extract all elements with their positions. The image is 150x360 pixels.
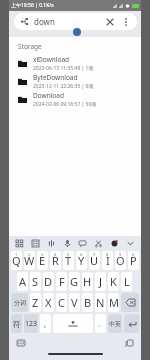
staticText: G	[70, 274, 79, 289]
button[interactable]: ByteDownload	[9, 72, 141, 90]
staticText: F	[59, 274, 65, 289]
staticText: 。	[98, 320, 104, 328]
staticText: 6	[80, 252, 83, 257]
staticText: M	[109, 295, 119, 310]
button[interactable]: 5	[63, 251, 74, 270]
button[interactable]: Messages	[76, 237, 89, 250]
button[interactable]: 符	[11, 314, 22, 333]
staticText: E	[39, 253, 46, 268]
button[interactable]: 2	[24, 251, 35, 270]
button[interactable]: Theme	[108, 237, 121, 250]
button[interactable]: Keyboard switch	[15, 337, 27, 349]
other: Enter	[128, 320, 136, 328]
button[interactable]: 4	[50, 251, 61, 270]
button[interactable]: 1	[11, 251, 22, 270]
button[interactable]: M	[108, 293, 119, 312]
staticText: Y	[78, 253, 85, 268]
button[interactable]: 7	[89, 251, 100, 270]
button[interactable]: X	[43, 293, 54, 312]
button[interactable]: 6	[76, 251, 87, 270]
button[interactable]: Z	[30, 293, 41, 312]
staticText: Download	[33, 91, 64, 100]
staticText: L	[124, 274, 130, 289]
button[interactable]: Microphone	[61, 237, 74, 250]
staticText: 3	[41, 252, 44, 257]
staticText: xlDownload	[33, 55, 70, 64]
staticText: X	[45, 295, 52, 310]
staticText: 上午10:56 | 0.1K/s	[11, 2, 54, 9]
button[interactable]: 9	[115, 251, 126, 270]
staticText: S	[32, 274, 39, 289]
staticText: W	[24, 253, 35, 268]
other: Filter	[21, 18, 28, 25]
staticText: 符	[13, 319, 21, 329]
button[interactable]: Voice tune	[45, 237, 58, 250]
staticText: 2023-06-13 11:55:49 | 1项	[33, 65, 94, 72]
staticText: O	[116, 253, 125, 268]
staticText: 分词	[14, 299, 26, 307]
staticText: V	[71, 295, 78, 310]
button[interactable]: L	[121, 272, 132, 291]
staticText: Q	[12, 253, 21, 268]
button[interactable]: J	[95, 272, 106, 291]
button[interactable]: C	[56, 293, 67, 312]
button[interactable]: H	[82, 272, 93, 291]
staticText: 中英	[109, 320, 121, 328]
button[interactable]: 中英	[108, 314, 122, 333]
staticText: 2024-02-06 09:16:57 | 50项	[33, 101, 97, 108]
staticText: 2	[28, 252, 31, 257]
button[interactable]: K	[108, 272, 119, 291]
staticText: 0	[132, 252, 135, 257]
button[interactable]: B	[82, 293, 93, 312]
button[interactable]: 8	[102, 251, 113, 270]
button[interactable]: Backspace	[121, 293, 139, 312]
button[interactable]: xlDownload	[9, 54, 141, 72]
button[interactable]: N	[95, 293, 106, 312]
other: Backspace	[126, 299, 135, 306]
staticText: 2023-12-11 22:26:35 | 0项	[33, 83, 94, 90]
staticText: Z	[32, 295, 39, 310]
staticText: T	[65, 253, 72, 268]
button[interactable]: Download	[9, 90, 141, 108]
button[interactable]: D	[43, 272, 54, 291]
button[interactable]: 分词	[11, 293, 28, 312]
staticText: 8	[106, 252, 109, 257]
staticText: 9	[119, 252, 122, 257]
staticText: I	[106, 253, 110, 268]
button[interactable]: F	[56, 272, 67, 291]
button[interactable]: Filter	[14, 13, 137, 30]
staticText: 7	[93, 252, 96, 257]
staticText: U	[90, 253, 99, 268]
button[interactable]: Keyboard	[29, 237, 42, 250]
button[interactable]: Recent apps	[123, 337, 135, 349]
button[interactable]: More options	[119, 15, 133, 29]
button[interactable]: 3	[37, 251, 48, 270]
staticText: J	[99, 274, 103, 289]
staticText: down	[34, 16, 55, 27]
button[interactable]: S	[30, 272, 41, 291]
staticText: H	[83, 274, 92, 289]
button[interactable]: Clear	[103, 15, 117, 29]
button[interactable]: 。	[95, 314, 106, 333]
staticText: Storage	[18, 42, 42, 51]
staticText: K	[110, 274, 117, 289]
staticText: N	[96, 295, 105, 310]
staticText: P	[130, 253, 137, 268]
staticText: D	[44, 274, 53, 289]
staticText: R	[52, 253, 59, 268]
button[interactable]: ,	[40, 314, 51, 333]
staticText: ,	[44, 318, 47, 329]
button[interactable]: 123	[24, 314, 38, 333]
button[interactable]: V	[69, 293, 80, 312]
staticText: C	[58, 295, 65, 310]
other: Space	[66, 320, 80, 328]
staticText: A	[19, 274, 27, 289]
button[interactable]: Space	[53, 314, 93, 333]
button[interactable]: Collapse	[124, 237, 137, 250]
button[interactable]: A	[17, 272, 28, 291]
button[interactable]: G	[69, 272, 80, 291]
button[interactable]: Enter	[124, 314, 139, 333]
button[interactable]: Clipboard cut	[92, 237, 105, 250]
button[interactable]: Emoji grid	[13, 237, 26, 250]
button[interactable]: 0	[128, 251, 139, 270]
